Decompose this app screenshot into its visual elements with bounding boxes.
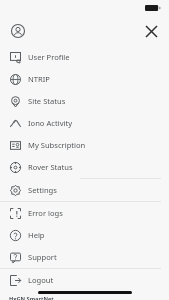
button[interactable]: NTRIP: [0, 68, 169, 90]
staticText: Logout: [28, 275, 54, 285]
staticText: My Subscription: [28, 140, 86, 150]
staticText: Settings: [28, 185, 57, 195]
button[interactable]: Settings: [0, 179, 169, 201]
button[interactable]: Logout: [0, 269, 169, 291]
button[interactable]: User Profile: [0, 46, 169, 68]
button[interactable]: Support: [0, 246, 169, 268]
button[interactable]: Rover Status: [0, 156, 169, 178]
button[interactable]: Account: [6, 19, 30, 43]
staticText: Iono Activity: [28, 118, 73, 128]
staticText: NTRIP: [28, 74, 50, 84]
button[interactable]: Iono Activity: [0, 112, 169, 134]
staticText: Error logs: [28, 208, 63, 218]
button[interactable]: Close: [139, 19, 163, 43]
staticText: Help: [28, 230, 45, 240]
button[interactable]: Help: [0, 224, 169, 246]
staticText: Support: [28, 252, 57, 262]
button[interactable]: My Subscription: [0, 134, 169, 156]
button[interactable]: Error logs: [0, 202, 169, 224]
button[interactable]: Site Status: [0, 90, 169, 112]
staticText: HxGN SmartNet: [9, 295, 54, 300]
staticText: Site Status: [28, 96, 66, 106]
staticText: User Profile: [28, 52, 70, 62]
staticText: Rover Status: [28, 162, 73, 172]
